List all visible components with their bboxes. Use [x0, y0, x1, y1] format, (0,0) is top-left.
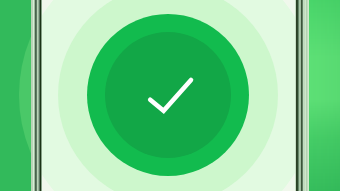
button[interactable]: Payment successful [0, 0, 340, 191]
